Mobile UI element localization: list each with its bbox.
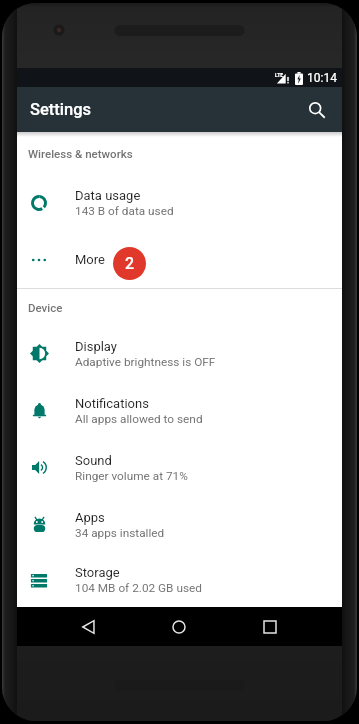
button[interactable]: Data usage [17, 174, 342, 231]
button[interactable]: 2 [113, 247, 146, 280]
staticText: 2 [125, 254, 135, 273]
staticText: Display [75, 339, 117, 354]
button[interactable]: Apps [17, 496, 342, 553]
staticText: 10:14 [307, 71, 337, 85]
staticText: Ringer volume at 71% [75, 469, 188, 483]
staticText: Storage [75, 565, 120, 580]
staticText: Wireless & networks [28, 147, 133, 160]
staticText: LTE [275, 72, 284, 78]
staticText: Settings [30, 100, 92, 119]
button[interactable]: Back [65, 607, 112, 646]
button[interactable]: More [17, 231, 342, 288]
staticText: 34 apps installed [75, 526, 165, 540]
button[interactable]: Notifications [17, 382, 342, 439]
staticText: Apps [75, 510, 105, 525]
staticText: Sound [75, 453, 112, 468]
staticText: All apps allowed to send [75, 412, 203, 426]
button[interactable]: Search [299, 92, 335, 128]
button[interactable]: Display [17, 325, 342, 382]
staticText: Notifications [75, 396, 149, 411]
staticText: More [75, 252, 105, 267]
button[interactable]: Storage [17, 553, 342, 607]
staticText: 104 MB of 2.02 GB used [75, 581, 202, 595]
staticText: Data usage [75, 188, 141, 203]
button[interactable]: Sound [17, 439, 342, 496]
button[interactable]: Home [155, 607, 202, 646]
staticText: Device [28, 301, 63, 314]
staticText: Adaptive brightness is OFF [75, 355, 216, 369]
button[interactable]: Recent apps [246, 607, 293, 646]
staticText: 143 B of data used [75, 204, 174, 218]
